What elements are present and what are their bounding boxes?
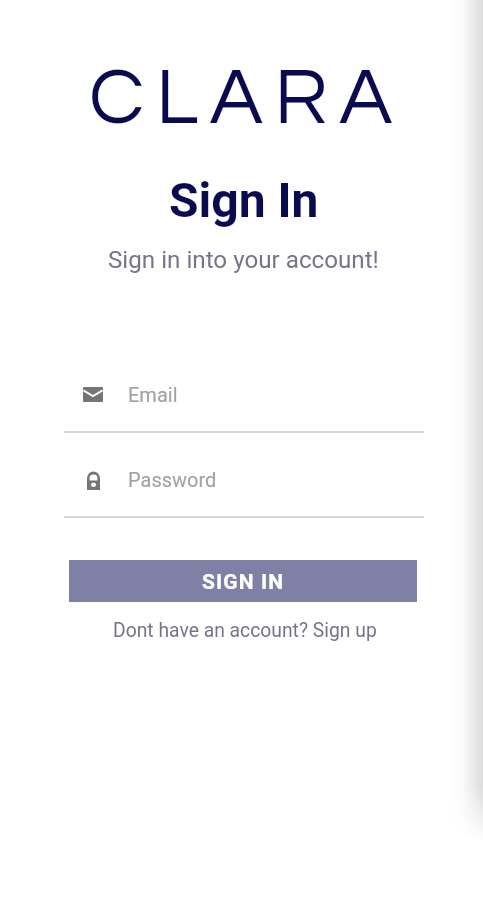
- button[interactable]: Dont have an account? Sign up: [113, 619, 377, 642]
- button[interactable]: Password: [64, 463, 424, 518]
- staticText: SIGN IN: [202, 570, 285, 595]
- other: Email: [83, 387, 103, 402]
- staticText: Email: [128, 383, 178, 406]
- button[interactable]: Email: [64, 378, 424, 433]
- staticText: Sign in into your account!: [108, 246, 379, 274]
- button[interactable]: SIGN IN: [69, 560, 417, 602]
- staticText: Password: [128, 468, 217, 491]
- staticText: Sign In: [169, 172, 319, 228]
- staticText: CLARA: [89, 57, 404, 139]
- staticText: Dont have an account? Sign up: [113, 619, 377, 642]
- other: Password: [87, 471, 100, 490]
